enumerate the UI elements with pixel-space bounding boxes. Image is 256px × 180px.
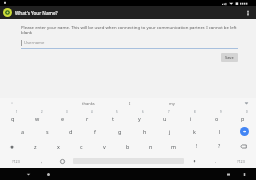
button[interactable]: Menu: [238, 168, 250, 180]
staticText: f: [94, 128, 96, 135]
button[interactable]: s: [35, 124, 59, 139]
button[interactable]: l: [207, 124, 232, 139]
button[interactable]: Back: [22, 168, 34, 180]
staticText: 0: [246, 110, 248, 114]
button[interactable]: n: [139, 139, 162, 154]
staticText: u: [163, 115, 167, 122]
staticText: h: [143, 128, 147, 135]
button[interactable]: I: [109, 98, 151, 108]
staticText: z: [34, 143, 37, 150]
button[interactable]: Enter: [232, 124, 256, 139]
button[interactable]: ?123: [226, 154, 256, 168]
staticText: m: [171, 143, 177, 150]
button[interactable]: 3: [50, 108, 75, 124]
staticText: j: [169, 128, 171, 135]
button[interactable]: g: [107, 124, 132, 139]
button[interactable]: f: [83, 124, 107, 139]
staticText: q: [11, 115, 15, 122]
staticText: 5: [116, 110, 118, 114]
button[interactable]: 8: [178, 108, 204, 124]
staticText: I: [129, 101, 131, 106]
staticText: p: [241, 115, 245, 122]
staticText: b: [126, 143, 130, 150]
button[interactable]: 1: [0, 108, 25, 124]
staticText: c: [80, 143, 83, 150]
staticText: 4: [91, 110, 93, 114]
button[interactable]: 4: [75, 108, 100, 124]
staticText: e: [61, 115, 65, 122]
button[interactable]: 2: [25, 108, 50, 124]
button[interactable]: 5: [100, 108, 126, 124]
button[interactable]: x: [47, 139, 70, 154]
staticText: 3: [66, 110, 68, 114]
button[interactable]: m: [162, 139, 185, 154]
button[interactable]: Expand suggestions: [236, 98, 256, 108]
staticText: x: [57, 143, 60, 150]
staticText: 7: [168, 110, 170, 114]
button[interactable]: b: [116, 139, 139, 154]
button[interactable]: c: [70, 139, 93, 154]
staticText: What's Your Name?: [15, 10, 243, 16]
button[interactable]: my: [151, 98, 193, 108]
button[interactable]: a: [11, 124, 35, 139]
staticText: w: [35, 115, 40, 122]
button[interactable]: Shift: [0, 139, 24, 154]
button[interactable]: 7: [152, 108, 178, 124]
staticText: Username: [24, 40, 45, 46]
staticText: i: [190, 115, 192, 122]
button[interactable]: App icon: [3, 8, 12, 17]
staticText: k: [193, 128, 196, 135]
button[interactable]: Backspace: [231, 139, 256, 154]
staticText: s: [46, 128, 49, 135]
staticText: d: [69, 128, 73, 135]
staticText: .: [215, 158, 217, 164]
button[interactable]: 0: [230, 108, 256, 124]
button[interactable]: ?123: [0, 154, 31, 168]
button[interactable]: 6: [126, 108, 152, 124]
button[interactable]: j: [157, 124, 182, 139]
staticText: 2: [41, 110, 43, 114]
staticText: r: [86, 115, 89, 122]
button[interactable]: Home: [42, 168, 54, 180]
staticText: o: [215, 115, 219, 122]
button[interactable]: More options: [243, 8, 253, 18]
staticText: y: [138, 115, 141, 122]
button[interactable]: ,: [31, 154, 52, 168]
button[interactable]: ?: [208, 139, 231, 154]
staticText: Please enter your name. This will be use…: [21, 24, 238, 36]
button[interactable]: Save: [221, 53, 238, 62]
button[interactable]: h: [132, 124, 157, 139]
staticText: ,: [41, 158, 43, 164]
button[interactable]: Username: [21, 40, 238, 49]
staticText: thanks: [82, 101, 95, 106]
staticText: Save: [225, 55, 234, 60]
staticText: 6: [142, 110, 144, 114]
staticText: g: [118, 128, 122, 135]
button[interactable]: Recent apps: [222, 168, 234, 180]
staticText: l: [219, 128, 221, 135]
staticText: 8: [194, 110, 196, 114]
staticText: ?123: [12, 159, 20, 164]
button[interactable]: Emoji: [52, 154, 73, 168]
staticText: ?123: [237, 159, 245, 164]
staticText: 9: [220, 110, 222, 114]
button[interactable]: d: [59, 124, 83, 139]
staticText: my: [169, 101, 175, 106]
button[interactable]: k: [182, 124, 207, 139]
staticText: t: [112, 115, 114, 122]
button[interactable]: thanks: [67, 98, 109, 108]
staticText: 1: [16, 110, 18, 114]
staticText: v: [103, 143, 106, 150]
button[interactable]: z: [24, 139, 47, 154]
staticText: a: [21, 128, 25, 135]
button[interactable]: !: [185, 139, 208, 154]
button[interactable]: Voice input: [184, 154, 205, 168]
button[interactable]: v: [93, 139, 116, 154]
staticText: n: [149, 143, 153, 150]
button[interactable]: 9: [204, 108, 230, 124]
staticText: ?: [218, 143, 221, 150]
staticText: !: [196, 143, 198, 150]
